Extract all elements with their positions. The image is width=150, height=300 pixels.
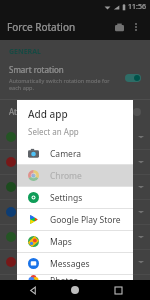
staticText: Maps [50,236,72,248]
staticText: Messages [50,258,90,270]
staticText: Select an App [28,126,79,137]
button[interactable]: Photos [17,275,133,285]
staticText: Camera [50,148,81,160]
button[interactable]: Recents [108,280,128,300]
button[interactable]: Chrome [17,165,133,186]
staticText: Smart rotation [9,64,64,75]
button[interactable]: Settings [17,187,133,208]
button[interactable]: Maps [17,231,133,252]
button[interactable]: Home [65,280,85,300]
staticText: Force Rotation [7,20,112,34]
staticText: Google Play Store [50,214,121,226]
staticText: Automatically switch rotation mode for e… [9,77,119,91]
staticText: Settings [50,192,83,204]
button[interactable]: Messages [17,253,133,274]
staticText: Photos [50,275,78,285]
button[interactable] [125,74,141,82]
staticText: 11:56 [128,2,146,12]
staticText: Add app [28,107,68,121]
button[interactable]: More options [129,20,143,34]
button[interactable]: Add app [112,20,126,34]
staticText: Attention [9,106,133,117]
staticText: Chrome [50,170,82,182]
staticText: GENERAL [9,47,41,57]
button[interactable]: Camera [17,143,133,164]
button[interactable]: Info [133,108,141,116]
button[interactable]: Google Play Store [17,209,133,230]
button[interactable]: Back [23,280,43,300]
